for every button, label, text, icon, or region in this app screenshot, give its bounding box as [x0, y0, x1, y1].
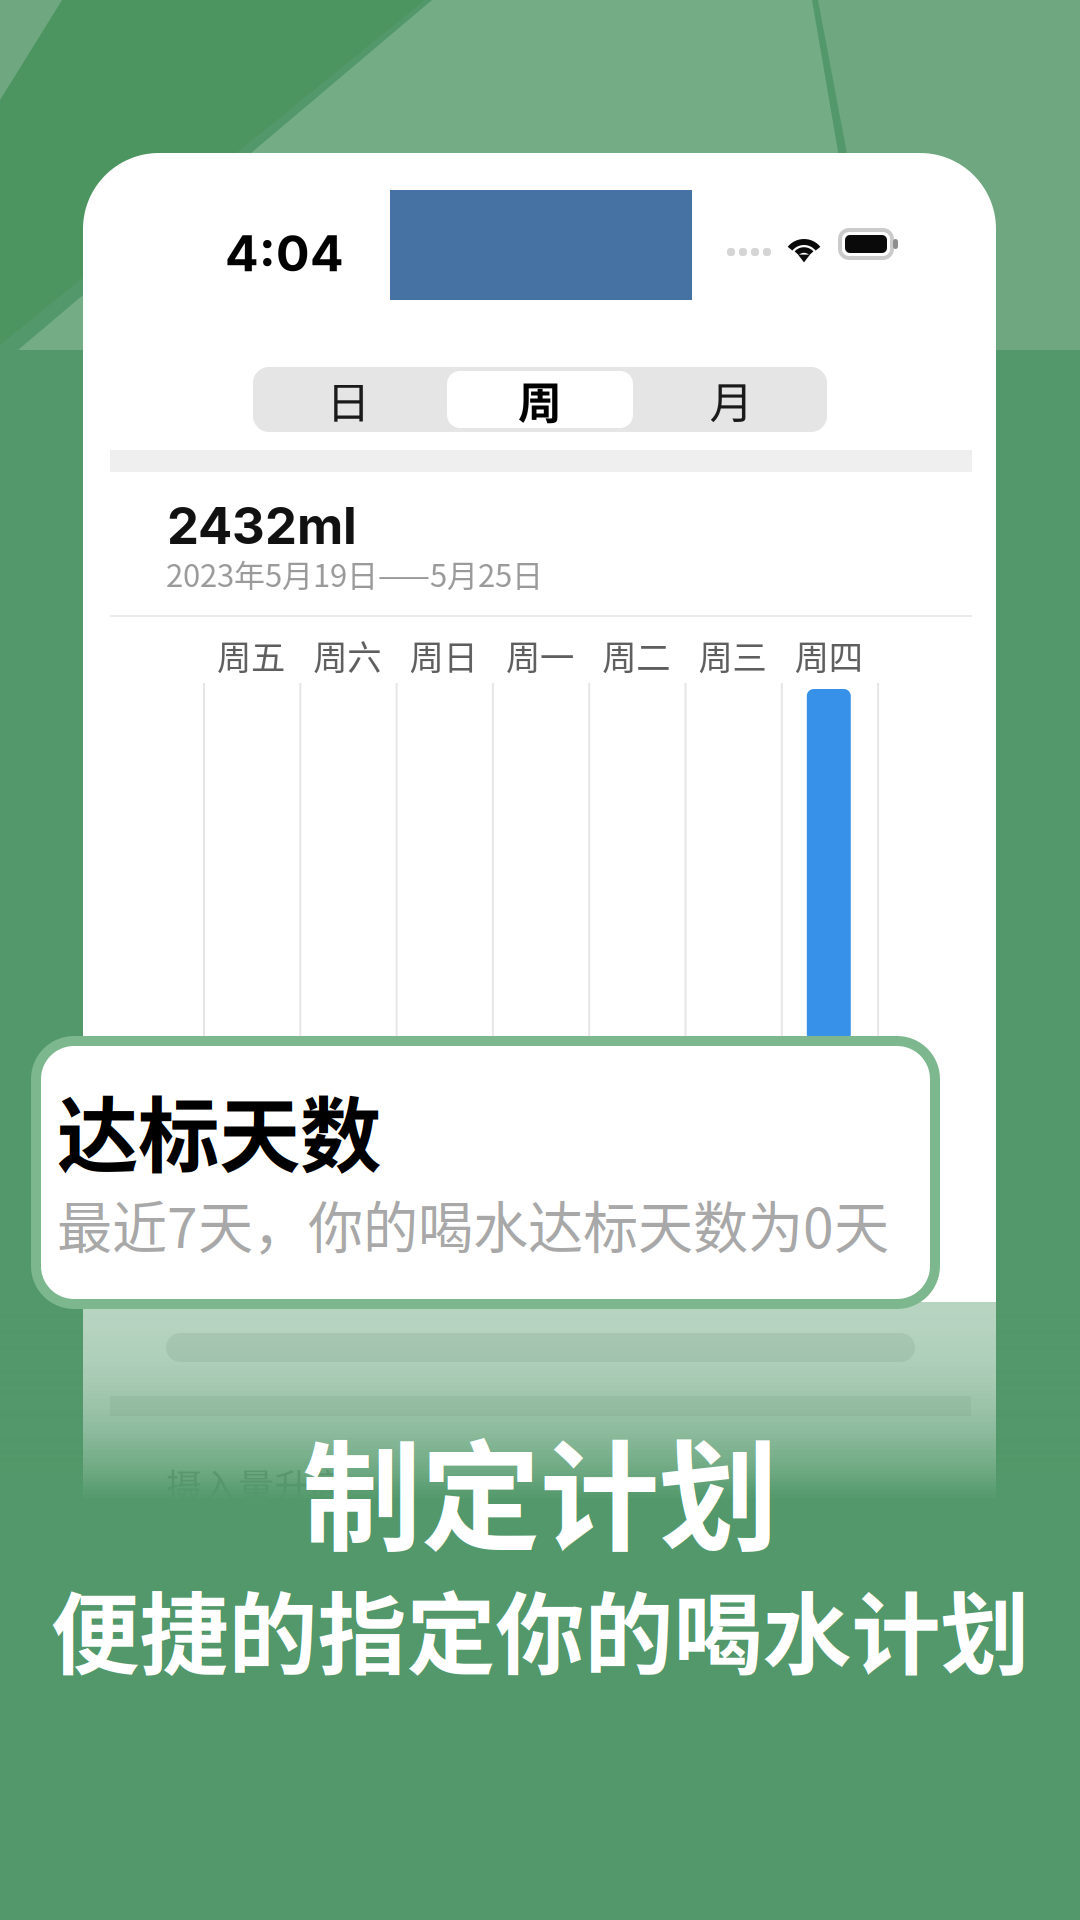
- staticText: 达标天数: [57, 1071, 381, 1189]
- staticText: 4:04: [225, 223, 344, 283]
- staticText: 周: [518, 368, 562, 431]
- staticText: 周四: [795, 630, 863, 680]
- staticText: 日: [326, 368, 370, 431]
- staticText: 周二: [602, 630, 670, 680]
- staticText: 周三: [698, 630, 766, 680]
- staticText: 周一: [506, 630, 574, 680]
- staticText: 周五: [217, 630, 285, 680]
- staticText: 最近7天，你的喝水达标天数为0天: [57, 1184, 889, 1264]
- staticText: 2023年5月19日——5月25日: [166, 551, 543, 596]
- staticText: 月: [709, 368, 753, 431]
- button[interactable]: Week: [253, 367, 439, 432]
- staticText: 摄入量升高: [166, 1458, 346, 1510]
- staticText: 制定计划: [302, 1403, 778, 1575]
- staticText: 2432ml: [167, 495, 357, 556]
- staticText: 周日: [410, 630, 478, 680]
- staticText: 便捷的指定你的喝水计划: [50, 1564, 1029, 1692]
- button[interactable]: Day: [253, 367, 444, 432]
- staticText: 周六: [313, 630, 381, 680]
- button[interactable]: Month: [253, 367, 444, 432]
- staticText: g/L: [520, 1253, 593, 1308]
